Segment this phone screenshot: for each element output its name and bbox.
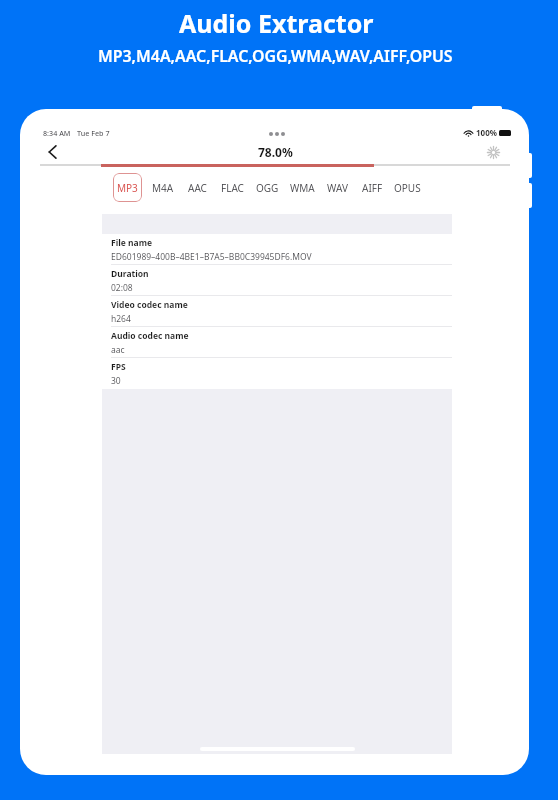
button[interactable]: Loading (480, 142, 506, 162)
staticText: 78.0% (258, 144, 293, 160)
staticText: Audio Extractor (179, 6, 374, 40)
button[interactable]: FLAC (215, 173, 250, 202)
button[interactable]: MP3 (113, 173, 142, 202)
button[interactable]: Back (42, 142, 62, 162)
button[interactable]: Audio codec name (102, 327, 452, 358)
staticText: Tue Feb 7 (77, 128, 110, 138)
button[interactable]: Video codec name (102, 296, 452, 327)
button[interactable]: AIFF (355, 173, 390, 202)
staticText: 02:08 (111, 282, 133, 294)
staticText: aac (111, 344, 125, 356)
staticText: OPUS (394, 181, 421, 195)
button[interactable]: OPUS (390, 173, 425, 202)
staticText: AIFF (362, 181, 383, 195)
staticText: Audio codec name (111, 330, 189, 342)
staticText: ED601989–400B–4BE1–B7A5–BB0C39945DF6.MOV (111, 251, 312, 263)
button[interactable]: AAC (180, 173, 215, 202)
staticText: FPS (111, 361, 126, 373)
staticText: 30 (111, 375, 121, 387)
staticText: 8:34 AM (43, 128, 71, 138)
staticText: OGG (256, 181, 279, 195)
staticText: MP3,M4A,AAC,FLAC,OGG,WMA,WAV,AIFF,OPUS (98, 45, 453, 67)
staticText: WAV (327, 181, 348, 195)
staticText: 100% (476, 127, 497, 138)
staticText: AAC (188, 181, 207, 195)
button[interactable]: FPS (102, 358, 452, 389)
button[interactable]: WAV (320, 173, 355, 202)
staticText: WMA (290, 181, 315, 195)
staticText: h264 (111, 313, 131, 325)
staticText: M4A (152, 181, 174, 195)
button[interactable]: Duration (102, 265, 452, 296)
staticText: Video codec name (111, 299, 188, 311)
staticText: File name (111, 237, 153, 249)
button[interactable]: WMA (285, 173, 320, 202)
staticText: MP3 (117, 181, 138, 195)
staticText: Duration (111, 268, 149, 280)
button[interactable]: M4A (145, 173, 180, 202)
button[interactable]: File name (102, 234, 452, 265)
button[interactable]: OGG (250, 173, 285, 202)
staticText: FLAC (221, 181, 244, 195)
